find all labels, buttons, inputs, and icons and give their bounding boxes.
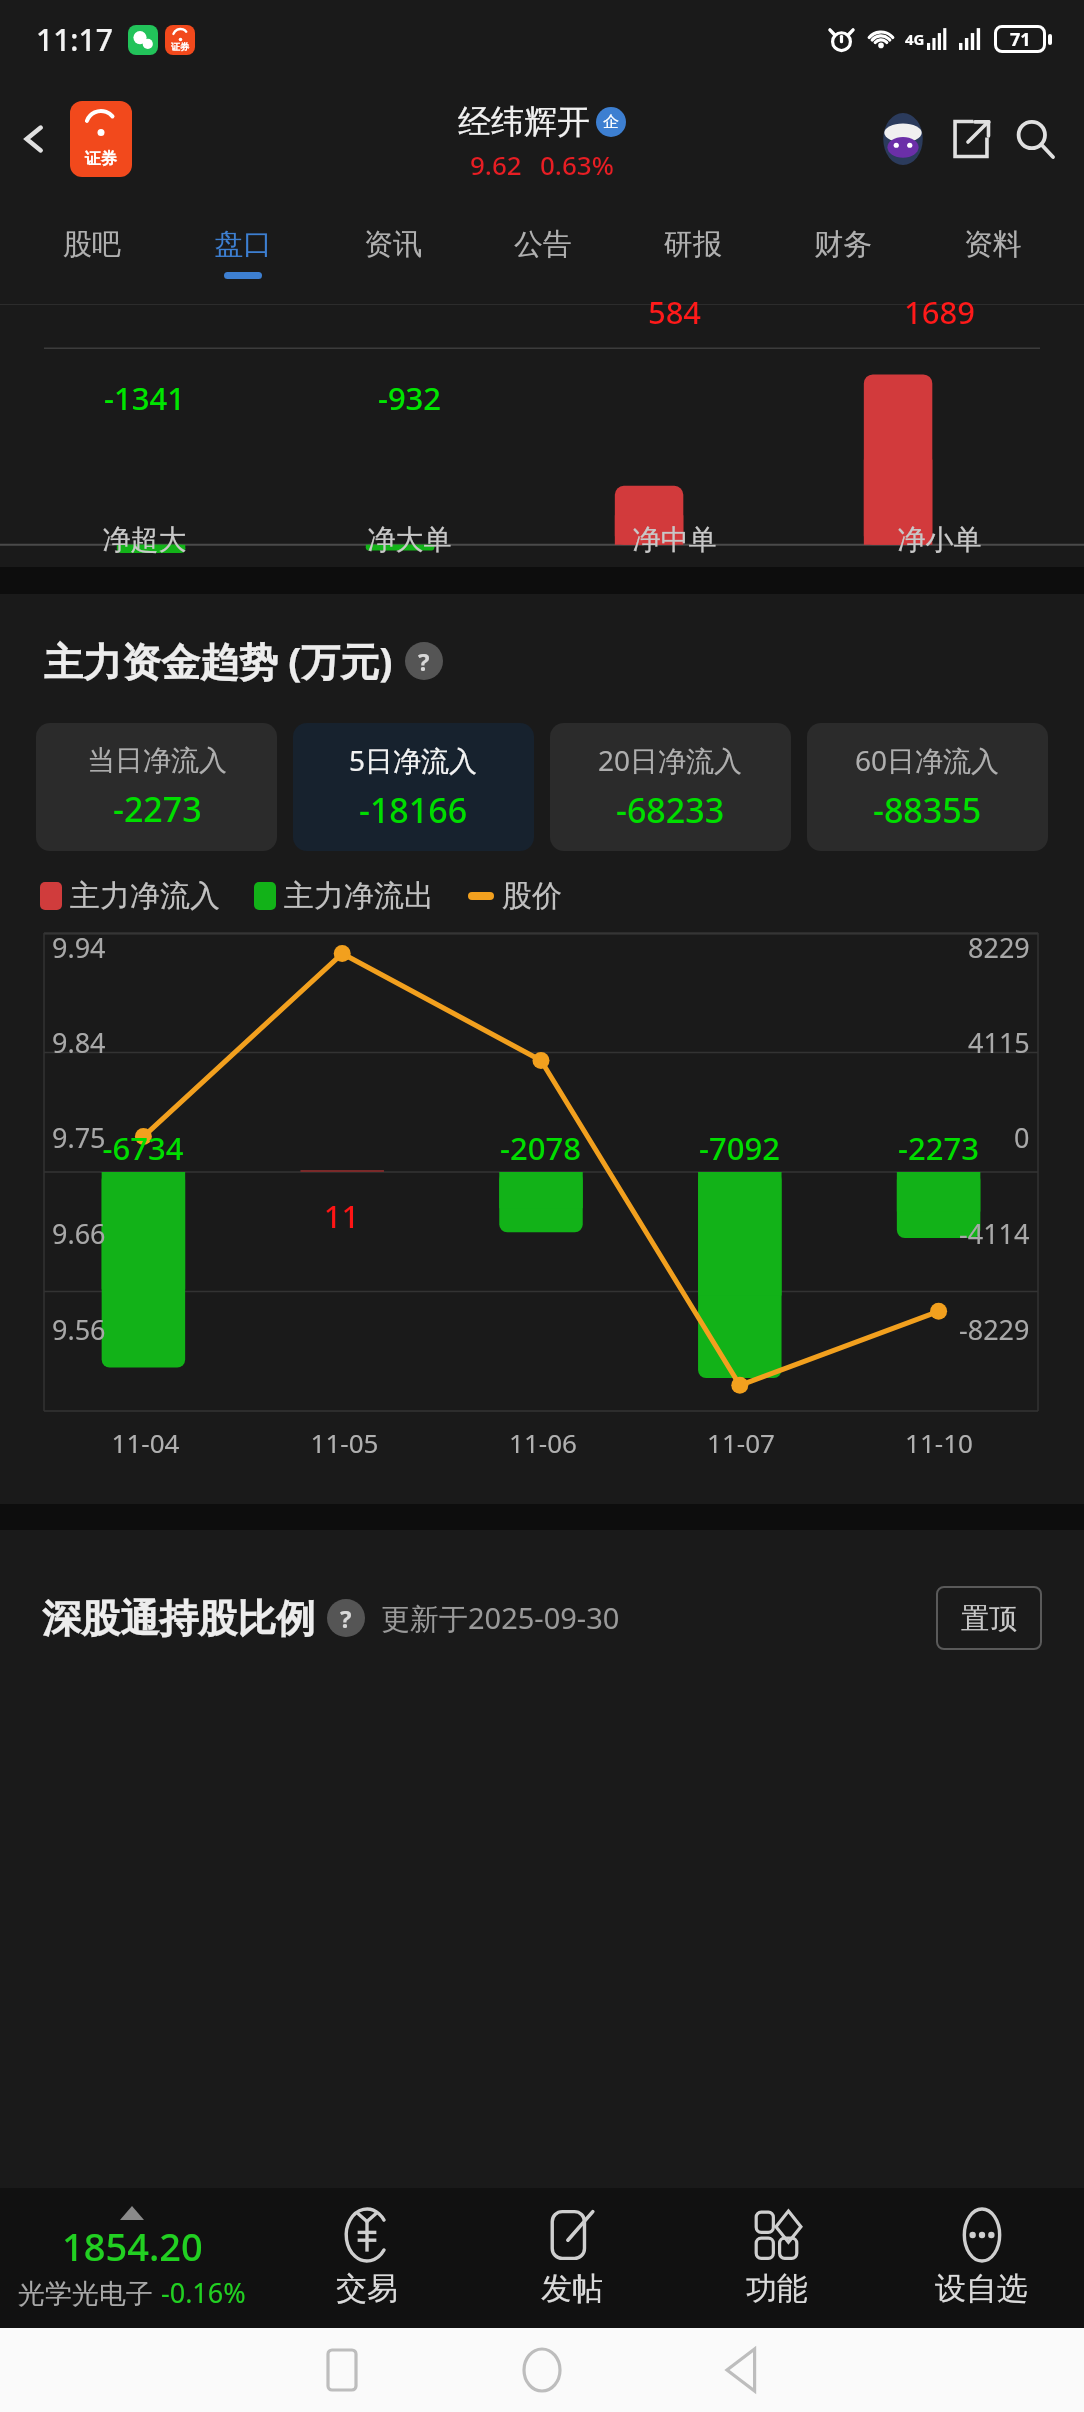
staticText: 股价 — [502, 877, 562, 915]
staticText: ? — [340, 1602, 352, 1635]
staticText: 设自选 — [935, 2269, 1028, 2308]
staticText: 净小单 — [807, 522, 1072, 557]
button[interactable]: Help — [327, 1599, 365, 1637]
button[interactable]: 财务 — [768, 200, 918, 304]
staticText: 11-10 — [840, 1425, 1038, 1460]
staticText: 净大单 — [277, 522, 542, 557]
staticText: 11-07 — [642, 1425, 840, 1460]
button[interactable]: Broker — [70, 101, 132, 177]
button[interactable]: Search — [1004, 108, 1066, 170]
staticText: 11-06 — [444, 1425, 642, 1460]
staticText: 主力资金趋势 (万元) — [44, 634, 393, 687]
button[interactable]: Home — [442, 2349, 642, 2391]
staticText: 1689 — [807, 291, 1072, 333]
staticText: ? — [418, 645, 430, 678]
staticText: 交易 — [336, 2269, 398, 2308]
staticText: 企 — [603, 112, 619, 132]
staticText: -2273 — [113, 786, 202, 832]
staticText: 11:17 — [36, 19, 113, 60]
button[interactable]: 交易 — [264, 2188, 469, 2328]
button[interactable]: Assistant — [872, 108, 934, 170]
button[interactable]: 20日净流入 — [550, 723, 791, 851]
button[interactable]: 公告 — [468, 200, 618, 304]
staticText: 证券 — [171, 41, 189, 52]
staticText: 584 — [542, 291, 807, 333]
staticText: 深股通持股比例 — [42, 1594, 315, 1643]
staticText: -7092 — [640, 1127, 839, 1169]
staticText: 4115 — [968, 1024, 1030, 1061]
staticText: 净超大 — [12, 522, 277, 557]
staticText: -6734 — [44, 1127, 242, 1169]
button[interactable]: 资料 — [918, 200, 1068, 304]
staticText: -0.16% — [161, 2274, 246, 2311]
staticText: 功能 — [746, 2269, 808, 2308]
staticText: -88355 — [873, 787, 982, 833]
button[interactable]: 60日净流入 — [807, 723, 1048, 851]
staticText: 置顶 — [961, 1601, 1017, 1636]
staticText: 1854.20 — [62, 2220, 203, 2272]
staticText: -68233 — [616, 787, 725, 833]
staticText: 证券 — [85, 149, 117, 169]
staticText: 11 — [242, 1195, 441, 1237]
button[interactable]: 设自选 — [879, 2188, 1084, 2328]
staticText: 盘口 — [214, 226, 272, 263]
staticText: 主力净流入 — [70, 877, 220, 915]
staticText: 60日净流入 — [855, 741, 1000, 779]
staticText: -1341 — [12, 377, 277, 419]
staticText: -8229 — [959, 1311, 1030, 1348]
staticText: -2078 — [441, 1127, 640, 1169]
staticText: 11-04 — [46, 1425, 245, 1460]
staticText: 5日净流入 — [349, 741, 478, 779]
staticText: 0.63% — [540, 147, 614, 182]
button[interactable]: Back — [0, 104, 70, 174]
staticText: -932 — [277, 377, 542, 419]
staticText: 9.84 — [52, 1024, 106, 1061]
staticText: 资讯 — [364, 226, 422, 263]
staticText: -4114 — [959, 1215, 1030, 1252]
button[interactable]: 置顶 — [936, 1586, 1042, 1650]
staticText: 4G — [905, 29, 925, 49]
staticText: 股吧 — [63, 226, 121, 263]
staticText: 经纬辉开 — [458, 101, 590, 143]
staticText: 9.62 — [470, 147, 522, 182]
button[interactable]: 当日净流入 — [36, 723, 277, 851]
staticText: 9.66 — [52, 1215, 106, 1252]
staticText: 资料 — [964, 226, 1022, 263]
staticText: 20日净流入 — [598, 741, 743, 779]
button[interactable]: Share — [940, 108, 1002, 170]
staticText: 发帖 — [541, 2269, 603, 2308]
button[interactable]: Back — [642, 2349, 842, 2391]
button[interactable]: 功能 — [674, 2188, 879, 2328]
staticText: 9.56 — [52, 1311, 106, 1348]
staticText: 当日净流入 — [87, 743, 227, 778]
staticText: 财务 — [814, 226, 872, 263]
button[interactable]: 股吧 — [16, 200, 167, 304]
button[interactable]: Help — [405, 642, 443, 680]
staticText: 更新于2025-09-30 — [381, 1598, 620, 1638]
staticText: 71 — [1010, 27, 1031, 52]
button[interactable]: 发帖 — [469, 2188, 674, 2328]
button[interactable]: 资讯 — [318, 200, 468, 304]
button[interactable]: 1854.20 — [0, 2188, 264, 2328]
button[interactable]: 5日净流入 — [293, 723, 534, 851]
staticText: 0 — [1014, 1119, 1030, 1156]
staticText: 光学光电子 — [18, 2274, 161, 2311]
button[interactable]: 盘口 — [167, 200, 318, 304]
staticText: -2273 — [839, 1127, 1038, 1169]
staticText: 公告 — [514, 226, 572, 263]
button[interactable]: Recents — [242, 2350, 442, 2390]
staticText: 主力净流出 — [284, 877, 434, 915]
staticText: 净中单 — [542, 522, 807, 557]
button[interactable]: 研报 — [618, 200, 768, 304]
staticText: 11-05 — [245, 1425, 444, 1460]
staticText: 研报 — [664, 226, 722, 263]
staticText: 9.75 — [52, 1119, 106, 1156]
staticText: 8229 — [968, 929, 1030, 966]
staticText: -18166 — [359, 787, 468, 833]
staticText: 9.94 — [52, 929, 106, 966]
